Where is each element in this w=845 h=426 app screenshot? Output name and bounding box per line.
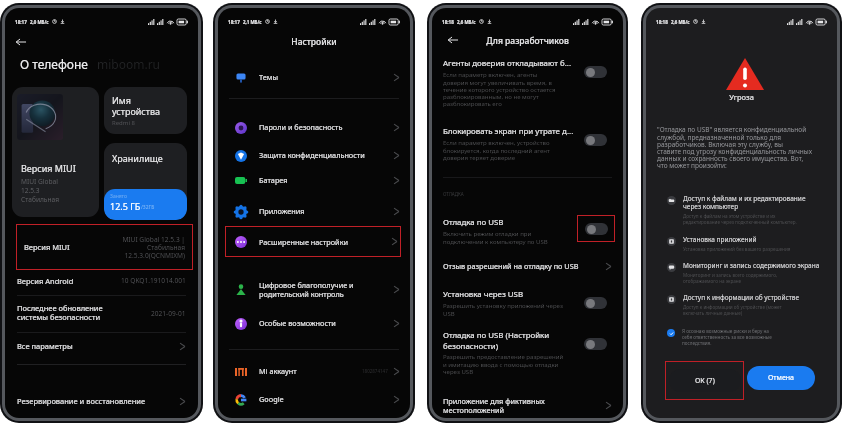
staticText: Доступ к информации об устройстве xyxy=(683,293,799,302)
staticText: Я осознаю возможные риски и беру на себя… xyxy=(682,328,772,346)
button[interactable]: Приложение для фиктивных местоположений xyxy=(432,396,623,415)
button[interactable]: Установка приложений xyxy=(646,235,837,252)
staticText: 18:18 xyxy=(442,19,454,25)
staticText: Отладка по USB xyxy=(443,217,504,228)
staticText: Google xyxy=(259,394,393,404)
button[interactable]: Toggle xyxy=(585,223,608,235)
staticText: Версия MIUI xyxy=(21,162,76,174)
staticText: 2021-09-01 xyxy=(151,309,186,318)
staticText: Отладка по USB (Настройки безопасности) xyxy=(443,330,550,351)
staticText: Установка приложений без вашего разрешен… xyxy=(683,246,791,252)
staticText: 10 QKQ1.191014.001 xyxy=(121,276,186,285)
staticText: Защита конфиденциальности xyxy=(259,150,393,160)
button[interactable]: Резервирование и восстановление xyxy=(5,389,198,413)
staticText: Пароли и безопасность xyxy=(259,122,393,132)
button[interactable]: Google xyxy=(218,385,410,413)
staticText: 2,1 МБ/с xyxy=(243,19,262,25)
staticText: 12.5 ГБ xyxy=(110,200,141,212)
button[interactable]: Отладка по USB xyxy=(432,217,623,246)
button[interactable]: Отладка по USB (Настройки безопасности) xyxy=(432,330,623,376)
button[interactable]: Установка через USB xyxy=(432,289,623,318)
staticText: 18:18 xyxy=(656,19,668,25)
button[interactable]: Батарея xyxy=(218,166,410,194)
button[interactable]: Агенты доверия откладывают б... xyxy=(432,58,623,108)
staticText: Доступ к информации об устройстве (может… xyxy=(683,304,782,316)
staticText: Все параметры xyxy=(17,341,179,351)
staticText: Включить режим отладки при подключении к… xyxy=(443,230,548,246)
staticText: 2,6 МБ/с xyxy=(457,19,476,25)
button[interactable]: Toggle xyxy=(584,134,607,146)
staticText: Отмена xyxy=(768,373,795,383)
staticText: 2,0 МБ/с xyxy=(30,19,49,25)
staticText: Хранилище xyxy=(112,152,163,164)
staticText: Установка через USB xyxy=(443,289,524,300)
button[interactable]: Toggle xyxy=(584,66,607,78)
staticText: Имя устройства xyxy=(112,94,161,117)
staticText: Redmi 8 xyxy=(112,119,135,127)
staticText: 18:17 xyxy=(228,19,240,25)
button[interactable]: Отмена xyxy=(747,366,815,390)
staticText: ОТЛАДКА xyxy=(443,191,464,197)
staticText: Мониторинг и запись содержимого экрана xyxy=(683,261,820,270)
button[interactable]: Мониторинг и запись содержимого экрана xyxy=(646,261,837,284)
button[interactable]: ОК (7) xyxy=(665,361,744,400)
staticText: Батарея xyxy=(259,175,393,185)
staticText: Резервирование и восстановление xyxy=(17,396,179,406)
button[interactable]: Цифровое благополучие и родительский кон… xyxy=(218,275,410,303)
staticText: /32ГБ xyxy=(141,204,155,211)
staticText: Для разработчиков xyxy=(432,35,623,47)
button[interactable]: Версия MIUI xyxy=(12,87,99,217)
button[interactable]: Последнее обновление системы безопасност… xyxy=(5,298,198,328)
staticText: Если параметр включен, устройство блокир… xyxy=(443,139,550,162)
staticText: Приложения xyxy=(259,206,393,216)
button[interactable]: Back xyxy=(445,32,461,48)
staticText: Занято xyxy=(110,193,127,200)
button[interactable]: Защита конфиденциальности xyxy=(218,141,410,169)
staticText: 2,6 МБ/с xyxy=(671,19,690,25)
staticText: MIUI Global 12.5.3 | Стабильная 12.5.3.0… xyxy=(122,235,185,260)
button[interactable]: Приложения xyxy=(218,197,410,225)
staticText: "Отладка по USB" является конфиденциальн… xyxy=(657,125,812,170)
staticText: Угроза xyxy=(646,92,837,102)
staticText: Цифровое благополучие и родительский кон… xyxy=(259,280,393,299)
button[interactable]: Доступ к файлам и их редактирование чере… xyxy=(646,194,837,225)
button[interactable]: Все параметры xyxy=(5,334,198,358)
staticText: miboom.ru xyxy=(97,56,161,72)
staticText: Доступ к файлам и их редактирование чере… xyxy=(683,194,806,211)
button[interactable]: Toggle xyxy=(584,297,607,309)
staticText: Последнее обновление системы безопасност… xyxy=(17,303,151,323)
staticText: Разрешить предоставление разрешений и им… xyxy=(443,353,564,376)
staticText: Мониторинг и запись всего содержимого, о… xyxy=(683,272,778,284)
staticText: Mi аккаунт xyxy=(259,366,362,376)
button[interactable]: Расширенные настройки xyxy=(225,226,401,257)
staticText: Разрешить установку приложений через USB xyxy=(443,302,563,318)
staticText: Блокировать экран при утрате д... xyxy=(443,126,574,137)
button[interactable]: Особые возможности xyxy=(218,309,410,337)
button[interactable]: Отзыв разрешений на отладку по USB xyxy=(432,256,623,276)
button[interactable]: Имя устройства xyxy=(104,87,187,134)
staticText: 18:17 xyxy=(15,19,27,25)
staticText: О телефоне xyxy=(20,56,88,72)
staticText: Расширенные настройки xyxy=(259,237,391,247)
staticText: Установка приложений xyxy=(683,235,757,244)
button[interactable]: Mi аккаунт xyxy=(218,357,410,385)
button[interactable]: Back xyxy=(12,33,29,50)
button[interactable]: Блокировать экран при утрате д... xyxy=(432,126,623,162)
button[interactable]: Хранилище xyxy=(104,143,187,220)
staticText: Отзыв разрешений на отладку по USB xyxy=(443,261,605,271)
button[interactable]: Toggle xyxy=(584,338,607,350)
staticText: Доступ к файлам на этом устройстве и их … xyxy=(683,213,797,225)
button[interactable]: Версия MIUI xyxy=(16,224,193,270)
button[interactable]: Темы xyxy=(218,63,410,91)
button[interactable]: Доступ к информации об устройстве xyxy=(646,293,837,316)
staticText: Настройки xyxy=(218,36,410,48)
staticText: MIUI Global 12.5.3 Стабильная xyxy=(21,177,59,204)
staticText: Версия Android xyxy=(17,276,121,286)
staticText: Особые возможности xyxy=(259,318,393,328)
staticText: Агенты доверия откладывают б... xyxy=(443,58,571,69)
button[interactable]: Версия Android xyxy=(5,270,198,291)
staticText: Приложение для фиктивных местоположений xyxy=(443,396,605,415)
button[interactable]: Пароли и безопасность xyxy=(218,113,410,141)
staticText: 1802874147 xyxy=(362,368,388,374)
staticText: Версия MIUI xyxy=(24,242,122,252)
